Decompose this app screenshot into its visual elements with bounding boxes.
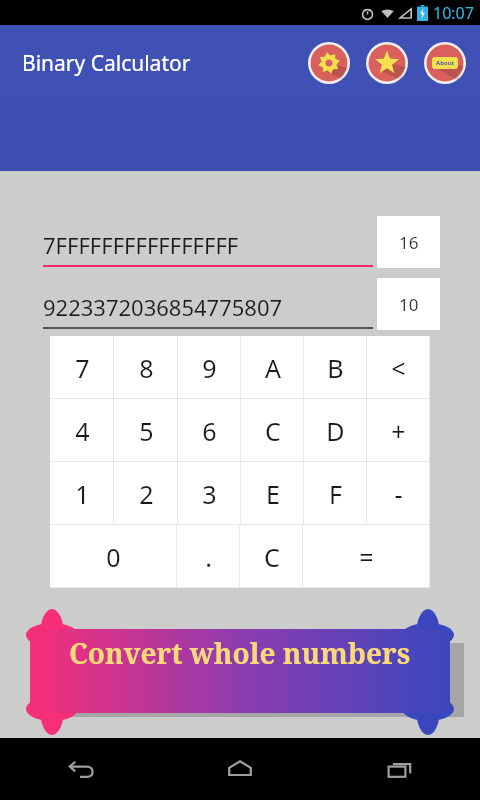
staticText: 10 bbox=[399, 293, 419, 316]
staticText: 9 bbox=[202, 351, 217, 385]
button[interactable]: A bbox=[241, 336, 304, 399]
button[interactable]: 10 bbox=[377, 278, 440, 330]
button[interactable]: 2 bbox=[114, 462, 178, 525]
button[interactable]: 7 bbox=[50, 336, 114, 399]
button[interactable]: 0 bbox=[50, 525, 177, 588]
staticText: 5 bbox=[139, 414, 154, 448]
button[interactable]: < bbox=[367, 336, 430, 399]
staticText: E bbox=[266, 477, 280, 511]
staticText: < bbox=[391, 351, 406, 385]
staticText: 8 bbox=[139, 351, 154, 385]
staticText: 9223372036854775807 bbox=[43, 292, 283, 322]
staticText: . bbox=[205, 540, 212, 574]
staticText: 16 bbox=[399, 231, 419, 254]
staticText: 4 bbox=[75, 414, 90, 448]
staticText: F bbox=[329, 477, 342, 511]
button[interactable]: D bbox=[304, 399, 367, 462]
button[interactable]: About bbox=[424, 42, 466, 84]
button[interactable]: + bbox=[367, 399, 430, 462]
button[interactable]: - bbox=[367, 462, 430, 525]
staticText: About bbox=[436, 59, 455, 67]
staticText: B bbox=[327, 351, 344, 385]
staticText: 1 bbox=[75, 477, 90, 511]
staticText: 0 bbox=[106, 540, 121, 574]
button[interactable]: 1 bbox=[50, 462, 114, 525]
button[interactable]: Settings bbox=[308, 42, 350, 84]
button[interactable]: Rate bbox=[366, 42, 408, 84]
staticText: 10:07 bbox=[433, 2, 474, 24]
button[interactable]: 3 bbox=[178, 462, 241, 525]
staticText: = bbox=[359, 540, 374, 574]
button[interactable]: Home bbox=[160, 738, 320, 800]
button[interactable]: = bbox=[303, 525, 430, 588]
button[interactable]: Recent apps bbox=[320, 738, 480, 800]
staticText: + bbox=[391, 414, 406, 448]
button[interactable]: Back bbox=[0, 738, 160, 800]
button[interactable]: . bbox=[177, 525, 240, 588]
staticText: Binary Calculator bbox=[22, 49, 191, 78]
staticText: 7 bbox=[75, 351, 90, 385]
staticText: 6 bbox=[202, 414, 217, 448]
staticText: 7FFFFFFFFFFFFFFFF bbox=[43, 230, 239, 260]
button[interactable]: C bbox=[240, 525, 303, 588]
button[interactable]: 9 bbox=[178, 336, 241, 399]
staticText: A bbox=[265, 351, 281, 385]
staticText: C bbox=[264, 540, 280, 574]
button[interactable]: B bbox=[304, 336, 367, 399]
button[interactable]: 4 bbox=[50, 399, 114, 462]
staticText: D bbox=[326, 414, 345, 448]
staticText: 2 bbox=[139, 477, 154, 511]
button[interactable]: 16 bbox=[377, 216, 440, 268]
button[interactable]: 8 bbox=[114, 336, 178, 399]
button[interactable]: E bbox=[241, 462, 304, 525]
button[interactable]: C bbox=[241, 399, 304, 462]
button[interactable]: F bbox=[304, 462, 367, 525]
button[interactable]: 5 bbox=[114, 399, 178, 462]
staticText: Convert whole numbers bbox=[69, 634, 411, 672]
staticText: C bbox=[265, 414, 281, 448]
staticText: - bbox=[394, 477, 403, 511]
button[interactable]: 6 bbox=[178, 399, 241, 462]
staticText: 3 bbox=[202, 477, 217, 511]
